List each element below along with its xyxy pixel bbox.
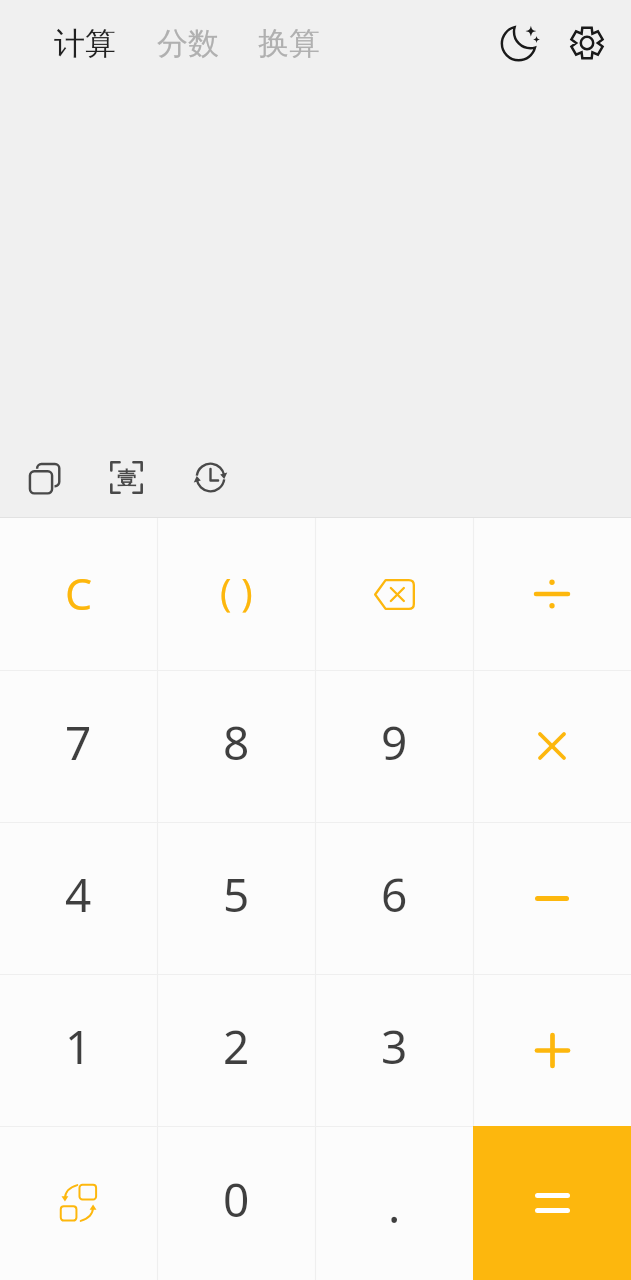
staticText: 9 <box>381 711 408 774</box>
button[interactable]: 4 <box>0 822 157 974</box>
staticText: 3 <box>381 1015 408 1078</box>
button[interactable]: 0 <box>157 1126 315 1280</box>
button[interactable]: 2 <box>157 974 315 1126</box>
button[interactable]: . <box>315 1126 473 1280</box>
staticText: 壹 <box>117 467 136 491</box>
staticText: 0 <box>223 1168 250 1231</box>
staticText: 1 <box>65 1015 92 1078</box>
staticText: 2 <box>223 1015 250 1078</box>
staticText: 4 <box>65 863 92 926</box>
button[interactable]: 8 <box>157 670 315 822</box>
staticText: 5 <box>223 863 250 926</box>
button[interactable] <box>473 518 631 670</box>
button[interactable]: 5 <box>157 822 315 974</box>
staticText: 换算 <box>258 24 320 63</box>
button[interactable]: Scan <box>95 446 157 508</box>
button[interactable]: 1 <box>0 974 157 1126</box>
button[interactable]: 计算 <box>49 14 121 73</box>
button[interactable]: 7 <box>0 670 157 822</box>
staticText: 分数 <box>157 24 219 63</box>
staticText: 6 <box>381 863 408 926</box>
staticText: 7 <box>65 711 92 774</box>
button[interactable]: 3 <box>315 974 473 1126</box>
staticText: C <box>65 564 93 623</box>
button[interactable] <box>473 1126 631 1280</box>
staticText: 计算 <box>54 24 116 63</box>
button[interactable]: History <box>179 446 241 508</box>
button[interactable]: Copy <box>11 446 73 508</box>
button[interactable] <box>315 518 473 670</box>
button[interactable] <box>473 670 631 822</box>
button[interactable] <box>473 974 631 1126</box>
button[interactable]: 6 <box>315 822 473 974</box>
button[interactable]: 换算 <box>253 14 325 73</box>
staticText: 8 <box>223 711 250 774</box>
button[interactable]: Dark mode <box>496 14 554 72</box>
staticText: ( ) <box>220 565 253 617</box>
button[interactable]: 9 <box>315 670 473 822</box>
button[interactable] <box>0 1126 157 1280</box>
button[interactable]: 分数 <box>152 14 224 73</box>
button[interactable]: ( ) <box>157 518 315 670</box>
staticText: . <box>388 1174 401 1237</box>
button[interactable] <box>473 822 631 974</box>
button[interactable]: C <box>0 518 157 670</box>
button[interactable]: Settings <box>558 14 616 72</box>
